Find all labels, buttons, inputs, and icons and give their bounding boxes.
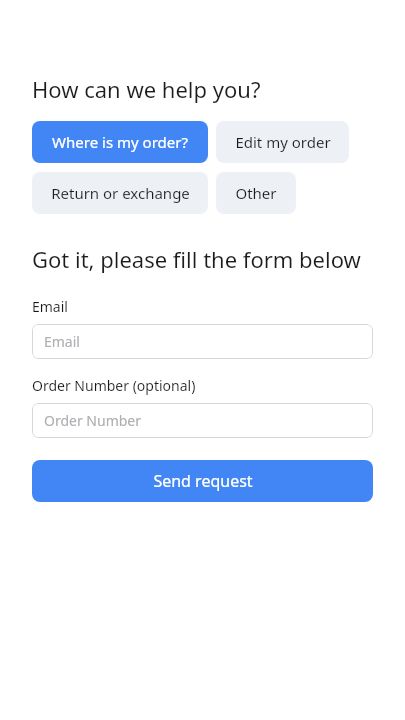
staticText: How can we help you? [32, 74, 261, 104]
button[interactable]: Edit my order [216, 121, 349, 163]
button[interactable]: Order Number [32, 403, 373, 438]
staticText: Email [44, 332, 80, 351]
staticText: Order Number [44, 411, 142, 430]
button[interactable]: Email [32, 324, 373, 359]
staticText: Order Number (optional) [32, 376, 196, 395]
staticText: Email [32, 297, 68, 316]
button[interactable]: Return or exchange [32, 172, 208, 214]
staticText: Edit my order [235, 132, 331, 152]
button[interactable]: Other [216, 172, 296, 214]
button[interactable]: Where is my order? [32, 121, 208, 163]
staticText: Send request [153, 470, 253, 492]
button[interactable]: Send request [32, 460, 373, 502]
staticText: Got it, please fill the form below [32, 244, 361, 274]
staticText: Other [235, 183, 277, 203]
staticText: Where is my order? [52, 132, 188, 152]
staticText: Return or exchange [51, 183, 190, 203]
